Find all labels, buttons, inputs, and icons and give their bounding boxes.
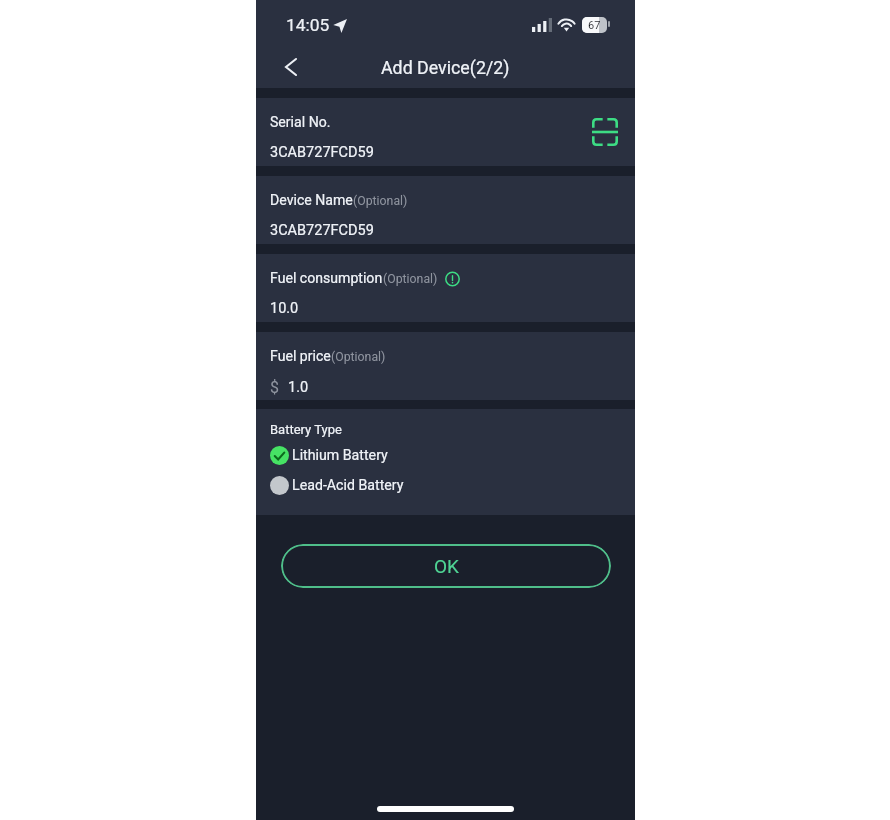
staticText: Fuel price (270, 348, 331, 365)
staticText: (Optional) (353, 194, 408, 208)
staticText: Fuel consumption (270, 270, 383, 287)
button[interactable]: Lithium Battery (256, 446, 635, 465)
button[interactable]: Back (276, 52, 306, 82)
staticText: Serial No. (270, 114, 331, 131)
button[interactable]: Fuel consumption (256, 254, 635, 322)
staticText: 3CAB727FCD59 (270, 144, 374, 161)
staticText: 3CAB727FCD59 (270, 222, 374, 239)
staticText: 14:05 (286, 15, 330, 35)
staticText: (Optional) (331, 350, 386, 364)
staticText: 10.0 (270, 300, 299, 317)
staticText: Lithium Battery (292, 447, 388, 464)
staticText: $ (270, 378, 279, 397)
staticText: Device Name (270, 192, 353, 209)
staticText: (Optional) (383, 272, 438, 286)
staticText: Add Device(2/2) (381, 57, 510, 78)
button[interactable]: Lead-Acid Battery (256, 476, 635, 495)
staticText: Lead-Acid Battery (292, 477, 404, 494)
button[interactable]: Scan barcode (587, 114, 623, 150)
staticText: 1.0 (288, 379, 309, 396)
button[interactable]: OK (281, 544, 611, 588)
staticText: Battery Type (270, 422, 342, 437)
staticText: OK (434, 555, 459, 577)
staticText: 67 (588, 19, 601, 32)
button[interactable]: Device Name (256, 176, 635, 244)
button[interactable]: Serial No. (256, 98, 635, 166)
button[interactable]: Fuel price (256, 332, 635, 400)
button[interactable]: Fuel consumption info (445, 272, 460, 287)
